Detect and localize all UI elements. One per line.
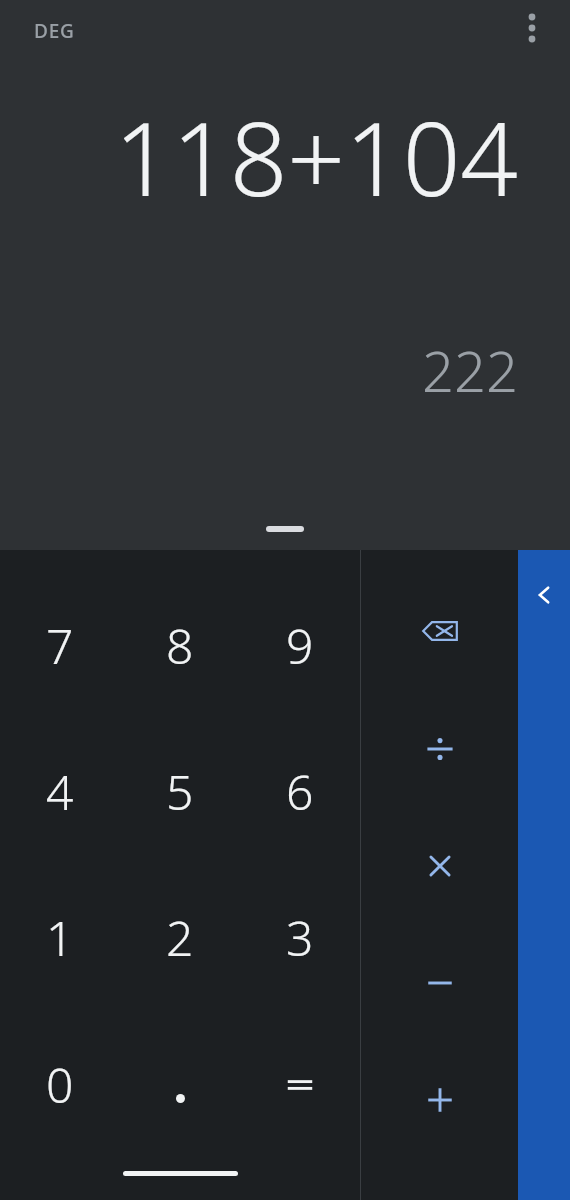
button[interactable]: 2 bbox=[120, 864, 240, 1011]
staticText: 8 bbox=[166, 613, 194, 678]
button[interactable]: 1 bbox=[0, 864, 120, 1011]
button[interactable] bbox=[240, 1011, 360, 1158]
button[interactable]: 7 bbox=[0, 572, 120, 718]
button[interactable]: More options bbox=[506, 2, 558, 54]
button[interactable]: 5 bbox=[120, 718, 240, 864]
button[interactable]: Divide bbox=[361, 690, 518, 807]
staticText: 6 bbox=[286, 759, 314, 824]
staticText: 5 bbox=[166, 759, 194, 824]
button[interactable]: Plus bbox=[361, 1041, 518, 1158]
other: Minus bbox=[426, 969, 454, 997]
button[interactable]: 0 bbox=[0, 1011, 120, 1158]
staticText: 1 bbox=[46, 905, 74, 970]
staticText: 9 bbox=[286, 613, 314, 678]
staticText: DEG bbox=[34, 18, 75, 44]
other: Multiply bbox=[427, 853, 453, 879]
staticText: 2 bbox=[166, 905, 194, 970]
staticText: 222 bbox=[0, 332, 518, 408]
staticText: 3 bbox=[286, 905, 314, 970]
staticText: 4 bbox=[46, 759, 74, 824]
button[interactable]: DEG bbox=[22, 10, 87, 52]
button[interactable]: 3 bbox=[240, 864, 360, 1011]
button[interactable]: 8 bbox=[120, 572, 240, 718]
button[interactable]: 6 bbox=[240, 718, 360, 864]
button[interactable]: Show advanced pad bbox=[518, 550, 570, 1200]
staticText: 118+104 bbox=[0, 88, 518, 226]
button[interactable]: 4 bbox=[0, 718, 120, 864]
other: Backspace bbox=[420, 611, 460, 651]
other: Divide bbox=[425, 734, 455, 764]
staticText: 0 bbox=[46, 1052, 74, 1117]
button[interactable] bbox=[120, 1011, 240, 1158]
button[interactable]: Multiply bbox=[361, 807, 518, 924]
button[interactable]: Backspace bbox=[361, 572, 518, 690]
staticText: 7 bbox=[46, 613, 74, 678]
other: Plus bbox=[426, 1086, 454, 1114]
button[interactable]: Minus bbox=[361, 924, 518, 1041]
button[interactable]: 9 bbox=[240, 572, 360, 718]
button[interactable]: Expand history bbox=[258, 518, 312, 540]
